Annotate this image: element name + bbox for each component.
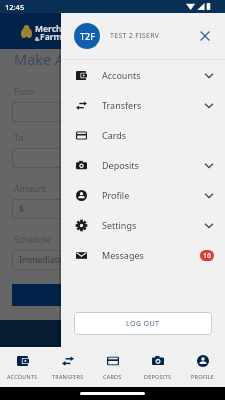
button[interactable] [12, 102, 162, 122]
button[interactable]: Close navigation drawer [198, 29, 212, 43]
button[interactable]: $ [12, 199, 162, 219]
staticText: Schedule [14, 234, 51, 246]
staticText: Immediate [19, 254, 63, 266]
button[interactable]: LOG OUT [74, 312, 212, 335]
staticText: From [14, 86, 35, 98]
button[interactable]: Immediate [12, 250, 162, 270]
staticText: TEST 2 FISERV [110, 31, 160, 41]
staticText: Transfers [102, 99, 142, 111]
button[interactable]: ACCOUNTS [0, 347, 45, 387]
button[interactable]: Messages [61, 240, 225, 270]
staticText: CARDS [103, 373, 122, 380]
staticText: Cards [102, 129, 127, 141]
button[interactable]: Transfers [61, 90, 225, 120]
button[interactable]: Deposits [61, 150, 225, 180]
button[interactable]: TRANSFERS [45, 347, 90, 387]
button[interactable]: CARDS [90, 347, 135, 387]
staticText: Settings [102, 219, 137, 231]
button[interactable] [12, 148, 162, 168]
button[interactable]: Accounts [61, 60, 225, 90]
staticText: DEPOSITS [144, 373, 172, 380]
staticText: 16 [203, 251, 212, 261]
button[interactable]: Profile [61, 180, 225, 210]
staticText: ACCOUNTS [7, 373, 38, 380]
button[interactable]: T2F [74, 13, 212, 59]
staticText: Deposits [102, 159, 139, 171]
staticText: TRANSFERS [52, 373, 84, 380]
button[interactable]: DEPOSITS [135, 347, 180, 387]
staticText: Amount [14, 183, 47, 195]
button[interactable]: Settings [61, 210, 225, 240]
button[interactable] [12, 284, 142, 306]
staticText: Make A Transfer [14, 49, 125, 69]
staticText: $ [19, 203, 24, 215]
staticText: LOG OUT [126, 319, 160, 329]
staticText: Accounts [102, 69, 141, 81]
staticText: 12:45 [5, 2, 25, 12]
staticText: Messages [102, 249, 144, 261]
button[interactable]: Cards [61, 120, 225, 150]
staticText: To [14, 132, 24, 144]
staticText: Profile [102, 189, 130, 201]
staticText: Farm [40, 31, 62, 43]
staticText: PROFILE [191, 373, 215, 380]
staticText: Merch [35, 23, 62, 35]
button[interactable]: PROFILE [180, 347, 225, 387]
staticText: & [35, 35, 40, 43]
staticText: T2F [80, 30, 95, 42]
